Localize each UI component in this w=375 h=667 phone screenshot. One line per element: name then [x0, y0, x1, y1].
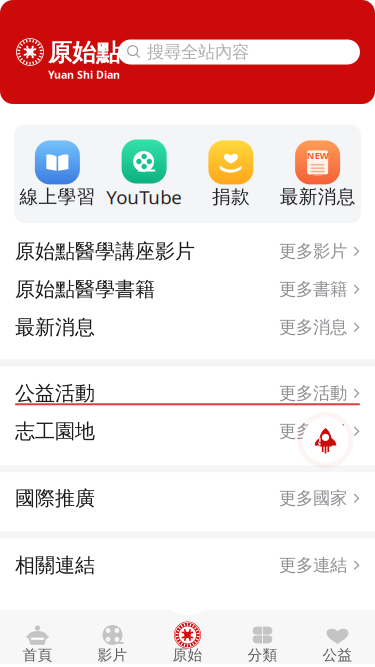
button[interactable]: YouTube: [101, 139, 188, 209]
button[interactable]: 原始點醫學講座影片: [0, 232, 375, 270]
staticText: 更多資訊: [279, 421, 347, 442]
button[interactable]: 公益: [300, 610, 375, 664]
staticText: 相關連結: [15, 553, 95, 578]
button[interactable]: 最新消息: [0, 308, 375, 346]
staticText: 原始點醫學講座影片: [15, 239, 195, 264]
button[interactable]: 原始點醫學書籍: [0, 270, 375, 308]
staticText: 更多影片: [279, 241, 347, 262]
button[interactable]: 國際推廣: [0, 479, 375, 517]
staticText: 志工園地: [15, 419, 95, 444]
button[interactable]: 首頁: [0, 610, 75, 664]
staticText: 更多活動: [279, 383, 347, 404]
staticText: 原始點醫學書籍: [15, 277, 155, 302]
staticText: NEW: [307, 149, 329, 162]
staticText: 原始: [172, 646, 202, 664]
staticText: Yuan Shi Dian: [48, 67, 120, 82]
staticText: 線上學習: [19, 185, 95, 208]
staticText: 更多書籍: [279, 279, 347, 300]
staticText: 最新消息: [15, 315, 95, 340]
staticText: 公益活動: [15, 381, 95, 406]
staticText: 國際推廣: [15, 486, 95, 511]
staticText: 首頁: [22, 646, 52, 664]
button[interactable]: 志工園地: [0, 412, 375, 450]
button[interactable]: 線上學習: [14, 140, 101, 208]
button[interactable]: NEW: [274, 140, 361, 208]
staticText: 最新消息: [280, 185, 356, 208]
staticText: 搜尋全站內容: [147, 41, 249, 63]
staticText: 影片: [97, 646, 127, 664]
staticText: 公益: [322, 646, 352, 664]
button[interactable]: 原始: [150, 610, 225, 664]
staticText: 分類: [247, 646, 277, 664]
button[interactable]: 相關連結: [0, 546, 375, 584]
button[interactable]: 捐款: [187, 140, 274, 208]
button[interactable]: 回到頂端: [297, 412, 353, 468]
staticText: 捐款: [212, 185, 250, 208]
staticText: YouTube: [106, 184, 182, 209]
staticText: 更多連結: [279, 555, 347, 576]
staticText: 更多國家: [279, 488, 347, 509]
staticText: 原始點: [48, 38, 120, 67]
button[interactable]: 公益活動: [0, 374, 375, 412]
staticText: 更多消息: [279, 317, 347, 338]
button[interactable]: 分類: [225, 610, 300, 664]
button[interactable]: 影片: [75, 610, 150, 664]
